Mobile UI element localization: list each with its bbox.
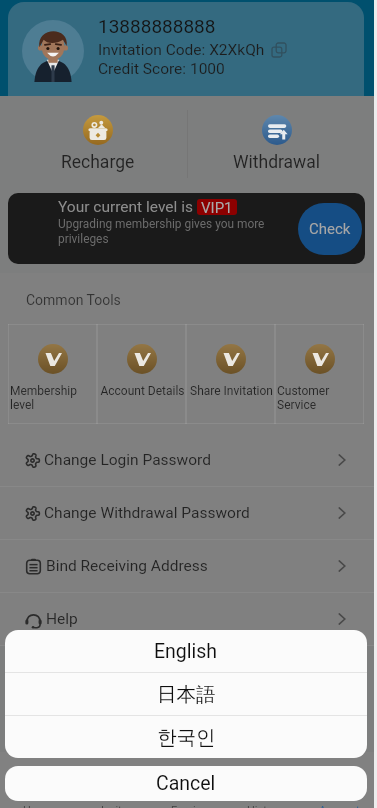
staticText: 13888888888 xyxy=(98,15,216,37)
staticText: Your current level is xyxy=(58,198,193,216)
button[interactable]: English xyxy=(5,630,367,672)
staticText: Recharge xyxy=(61,152,135,173)
staticText: 한국인 xyxy=(157,725,216,750)
staticText: Account xyxy=(319,804,360,808)
button[interactable]: Recharge xyxy=(8,96,187,192)
button[interactable]: 13888888888 xyxy=(8,2,364,96)
button[interactable]: Bind Receiving Address xyxy=(0,540,377,592)
button[interactable]: Change Withdrawal Password xyxy=(0,487,377,539)
staticText: 日本語 xyxy=(157,682,216,707)
button[interactable]: Invite xyxy=(76,752,152,808)
button[interactable]: 日本語 xyxy=(5,673,367,715)
staticText: Customer Service xyxy=(277,384,364,412)
staticText: Withdrawal xyxy=(233,152,321,173)
staticText: Credit Score: 1000 xyxy=(98,60,225,78)
button[interactable]: Account Details xyxy=(97,324,186,424)
button[interactable]: Customer Service xyxy=(275,324,364,424)
button[interactable]: Withdrawal xyxy=(187,96,367,192)
staticText: Bind Receiving Address xyxy=(46,557,208,575)
staticText: Invite xyxy=(101,804,128,808)
button[interactable]: Change Login Password xyxy=(0,434,377,486)
staticText: Check xyxy=(309,220,351,238)
staticText: Share Invitation xyxy=(188,384,275,398)
staticText: History xyxy=(247,804,282,808)
button[interactable]: Share Invitation xyxy=(186,324,275,424)
staticText: Account Details xyxy=(99,384,186,398)
staticText: Membership level xyxy=(10,384,97,412)
staticText: Change Withdrawal Password xyxy=(44,504,250,522)
button[interactable]: Earning xyxy=(152,752,227,808)
button[interactable]: Copy invitation code xyxy=(271,42,287,58)
button[interactable]: Membership level xyxy=(8,324,97,424)
staticText: Invitation Code: X2XkQh xyxy=(98,41,265,59)
button[interactable]: Cancel xyxy=(5,766,367,801)
button[interactable]: 한국인 xyxy=(5,716,367,758)
staticText: Earning xyxy=(171,804,208,808)
button[interactable]: Account xyxy=(302,752,377,808)
staticText: Help xyxy=(46,610,78,628)
button[interactable]: Your current level is xyxy=(8,193,365,264)
button[interactable]: Home xyxy=(0,752,76,808)
staticText: Common Tools xyxy=(26,292,121,308)
button[interactable]: Check xyxy=(298,203,362,255)
staticText: VIP1 xyxy=(201,199,233,215)
staticText: Cancel xyxy=(156,772,216,795)
staticText: Home xyxy=(23,804,53,808)
button[interactable]: History xyxy=(227,752,302,808)
staticText: English xyxy=(154,640,218,663)
staticText: Upgrading membership gives you more priv… xyxy=(58,217,265,246)
staticText: Change Login Password xyxy=(44,451,211,469)
button[interactable]: Help xyxy=(0,593,377,645)
